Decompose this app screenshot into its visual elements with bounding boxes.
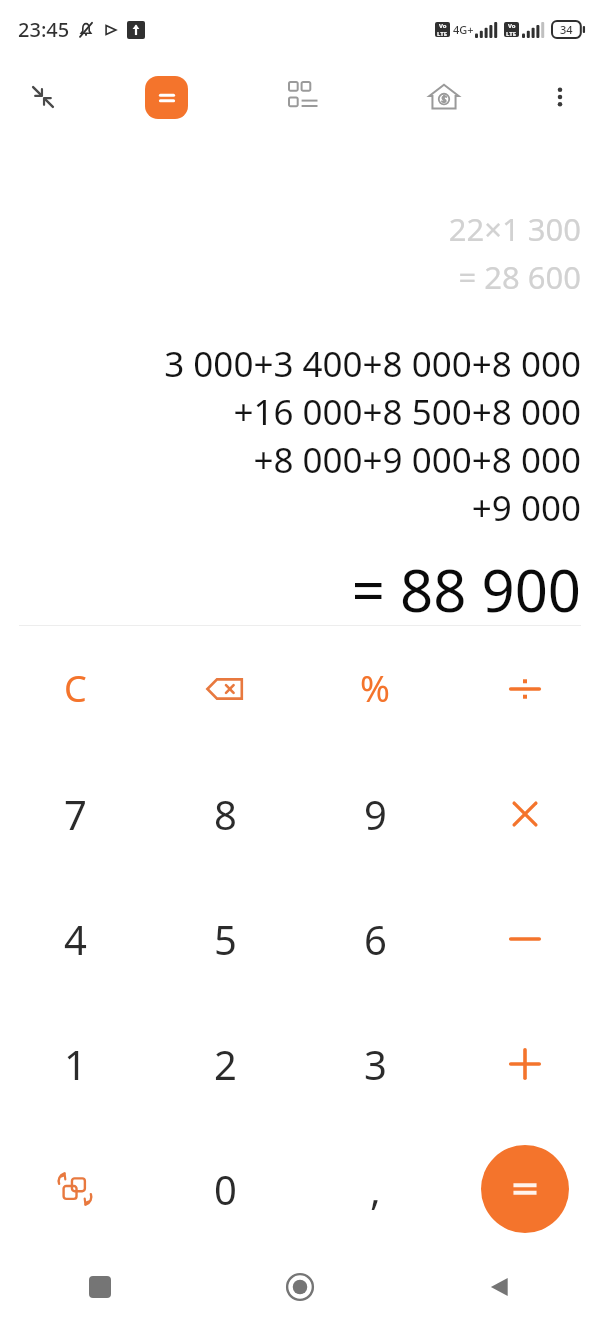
button[interactable]: More options bbox=[532, 69, 588, 125]
button[interactable]: 3 bbox=[300, 1001, 450, 1126]
button[interactable]: 7 bbox=[0, 751, 150, 876]
staticText: 9 bbox=[364, 787, 387, 841]
staticText: % bbox=[360, 664, 390, 713]
button[interactable]: Backspace bbox=[150, 626, 300, 751]
staticText: Vo bbox=[439, 22, 447, 30]
staticText: = 28 600 bbox=[19, 256, 581, 298]
button[interactable]: 0 bbox=[150, 1126, 300, 1251]
staticText: 0 bbox=[214, 1162, 237, 1216]
staticText: 5 bbox=[214, 912, 237, 966]
staticText: 6 bbox=[364, 912, 387, 966]
staticText: , bbox=[370, 1162, 381, 1216]
staticText: 23:45 bbox=[18, 16, 70, 43]
staticText: 2 bbox=[214, 1037, 237, 1091]
button[interactable]: 4 bbox=[0, 876, 150, 1001]
staticText: 1 bbox=[64, 1037, 87, 1091]
staticText: +16 000+8 500+8 000 bbox=[19, 388, 581, 436]
staticText: 8 bbox=[214, 787, 237, 841]
staticText: +9 000 bbox=[19, 484, 581, 532]
button[interactable]: % bbox=[300, 626, 450, 751]
staticText: 7 bbox=[64, 787, 87, 841]
staticText: 4 bbox=[64, 912, 87, 966]
staticText: 22×1 300 bbox=[19, 208, 581, 250]
button[interactable]: 2 bbox=[150, 1001, 300, 1126]
button[interactable]: Mortgage bbox=[415, 68, 473, 126]
button[interactable]: Divide bbox=[450, 626, 600, 751]
staticText: 3 000+3 400+8 000+8 000 bbox=[19, 340, 581, 388]
button[interactable]: 6 bbox=[300, 876, 450, 1001]
button[interactable]: Recents bbox=[0, 1251, 200, 1323]
button[interactable]: Collapse bbox=[14, 68, 72, 126]
staticText: +8 000+9 000+8 000 bbox=[19, 436, 581, 484]
button[interactable]: 1 bbox=[0, 1001, 150, 1126]
staticText: C bbox=[64, 664, 87, 713]
button[interactable]: Home bbox=[200, 1251, 400, 1323]
button[interactable]: Back bbox=[400, 1251, 600, 1323]
button[interactable]: Convert bbox=[0, 1126, 150, 1251]
button[interactable]: Calculator bbox=[138, 69, 194, 125]
button[interactable]: Minus bbox=[450, 876, 600, 1001]
staticText: LTE bbox=[437, 30, 448, 37]
button[interactable]: 8 bbox=[150, 751, 300, 876]
button[interactable]: 5 bbox=[150, 876, 300, 1001]
button[interactable]: 9 bbox=[300, 751, 450, 876]
staticText: 4G+ bbox=[453, 22, 474, 37]
staticText: Vo bbox=[508, 22, 516, 30]
staticText: 34 bbox=[560, 22, 573, 37]
button[interactable]: Equals bbox=[481, 1145, 569, 1233]
staticText: LTE bbox=[506, 30, 517, 37]
button[interactable]: Plus bbox=[450, 1001, 600, 1126]
button[interactable]: Converter bbox=[275, 68, 333, 126]
button[interactable]: C bbox=[0, 626, 150, 751]
staticText: 3 bbox=[364, 1037, 387, 1091]
button[interactable]: , bbox=[300, 1126, 450, 1251]
staticText: = 88 900 bbox=[19, 550, 581, 625]
button[interactable]: Multiply bbox=[450, 751, 600, 876]
